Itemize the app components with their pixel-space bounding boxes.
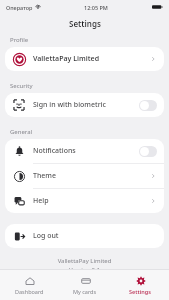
staticText: VallettaPay Limited xyxy=(33,54,149,64)
button[interactable]: VallettaPay Limited xyxy=(5,47,164,71)
button[interactable]: Toggle off xyxy=(139,146,157,157)
button[interactable]: Notifications xyxy=(5,139,164,163)
staticText: General xyxy=(10,128,33,136)
button[interactable]: Dashboard xyxy=(3,273,55,297)
staticText: My cards xyxy=(73,288,97,295)
staticText: Settings xyxy=(69,18,101,29)
staticText: Log out xyxy=(33,231,157,241)
button[interactable]: Help xyxy=(5,189,164,213)
staticText: Notifications xyxy=(33,146,139,156)
staticText: Settings xyxy=(129,288,151,295)
staticText: Sign in with biometric xyxy=(33,100,139,110)
button[interactable]: Theme xyxy=(5,164,164,188)
staticText: Theme xyxy=(33,171,149,181)
button[interactable]: Settings xyxy=(114,273,166,297)
button[interactable]: Log out xyxy=(5,224,164,248)
staticText: Security xyxy=(10,82,33,90)
staticText: 12:05 PM xyxy=(84,4,108,11)
staticText: Dashboard xyxy=(15,288,44,295)
button[interactable]: Toggle off xyxy=(139,100,157,111)
staticText: Help xyxy=(33,196,149,206)
button[interactable]: Sign in with biometric xyxy=(5,93,164,117)
staticText: VallettaPay Limited xyxy=(0,257,169,265)
staticText: Profile xyxy=(10,36,29,44)
button[interactable]: My cards xyxy=(59,273,111,297)
staticText: Version 0.1 xyxy=(0,266,169,269)
staticText: Оператор xyxy=(6,4,33,11)
